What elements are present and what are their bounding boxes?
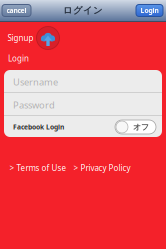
button[interactable]: > Privacy Policy (73, 163, 130, 173)
staticText: cancel (6, 6, 26, 15)
staticText: Login (140, 6, 158, 15)
staticText: Facebook Login (13, 123, 64, 131)
staticText: オフ (133, 122, 149, 132)
staticText: > Privacy Policy (73, 163, 130, 173)
staticText: Login (8, 53, 29, 64)
staticText: Password (13, 99, 55, 111)
staticText: ログイン (63, 5, 103, 16)
staticText: > Terms of Use (9, 163, 66, 173)
button[interactable]: Login (136, 4, 163, 16)
button[interactable]: cancel (2, 4, 31, 16)
staticText: Username (13, 76, 58, 88)
staticText: Signup (7, 33, 33, 43)
button[interactable]: > Terms of Use (9, 163, 66, 173)
